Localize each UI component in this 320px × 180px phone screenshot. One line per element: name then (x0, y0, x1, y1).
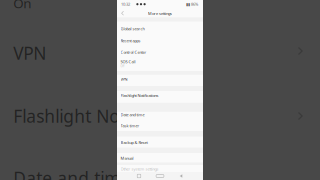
staticText: ▮▮ 86% (186, 1, 198, 7)
staticText: Flashlight Notif (13, 104, 135, 127)
staticText: Off (120, 64, 124, 68)
staticText: Backup & Reset (120, 140, 147, 145)
staticText: VPN (120, 76, 127, 82)
staticText: More settings (148, 11, 172, 16)
staticText: Manual (120, 155, 133, 161)
button[interactable]: Back (179, 174, 183, 178)
staticText: VPN (13, 41, 46, 64)
staticText: Control Center (120, 50, 146, 55)
staticText: Recent apps (120, 38, 140, 43)
staticText: 10:32 (121, 1, 130, 7)
staticText: Date and time (13, 166, 130, 180)
staticText: Date and time (120, 112, 144, 117)
staticText: On (13, 0, 31, 12)
staticText: SOS Call (120, 59, 135, 64)
staticText: Global search (120, 26, 144, 31)
button[interactable]: Recent apps (137, 174, 141, 178)
button[interactable]: Home (156, 174, 164, 178)
button[interactable]: Back (121, 11, 124, 16)
staticText: Task timer (120, 123, 139, 128)
staticText: Other system settings (120, 166, 158, 172)
staticText: Flashlight Notifications (120, 93, 158, 98)
